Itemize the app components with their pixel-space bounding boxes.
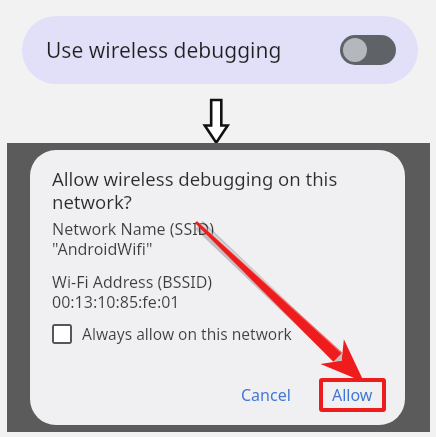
staticText: Network Name (SSID) "AndroidWifi" (52, 218, 215, 259)
button[interactable]: Use wireless debugging (22, 16, 418, 84)
staticText: Cancel (241, 384, 291, 406)
staticText: Wi-Fi Address (BSSID) 00:13:10:85:fe:01 (52, 271, 213, 312)
button[interactable]: Cancel (235, 380, 297, 410)
staticText: Allow (332, 384, 373, 406)
button[interactable]: Allow (319, 378, 386, 412)
button[interactable]: Use wireless debugging toggle (340, 35, 396, 65)
staticText: Allow wireless debugging on this network… (52, 166, 338, 214)
button[interactable]: Always allow on this network (52, 323, 292, 344)
staticText: Use wireless debugging (46, 36, 282, 65)
staticText: Always allow on this network (82, 323, 292, 344)
